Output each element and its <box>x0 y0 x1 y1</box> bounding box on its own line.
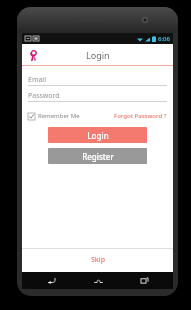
button[interactable]: Register <box>48 148 147 164</box>
button[interactable]: App logo <box>26 48 40 62</box>
staticText: Password <box>28 91 60 101</box>
button[interactable]: Remember Me <box>28 111 80 121</box>
button[interactable]: Back <box>34 272 68 289</box>
staticText: Forgot Password ? <box>114 112 167 120</box>
staticText: Skip <box>91 255 105 265</box>
button[interactable]: Login <box>48 127 147 143</box>
staticText: 6:06 <box>158 35 170 43</box>
button[interactable]: Home <box>81 272 115 289</box>
button[interactable]: Recents <box>127 272 161 289</box>
staticText: Login <box>87 130 109 141</box>
staticText: Register <box>82 151 114 162</box>
button[interactable]: Email <box>28 74 167 86</box>
staticText: Login <box>86 49 110 61</box>
button[interactable]: Skip <box>22 249 173 270</box>
button[interactable]: Password <box>28 90 167 102</box>
staticText: Email <box>28 75 46 85</box>
staticText: Remember Me <box>38 112 80 120</box>
button[interactable]: Forgot Password ? <box>114 111 167 121</box>
